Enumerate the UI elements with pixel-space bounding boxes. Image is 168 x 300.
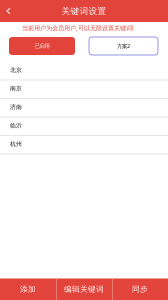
staticText: 添加 [20,284,36,294]
staticText: 济南 [10,103,22,111]
staticText: 已启用 [34,43,49,49]
button[interactable]: 编辑关键词 [56,278,112,300]
staticText: 当前用户为会员用户,可以无限设置关键词! [22,24,134,32]
staticText: 南京 [10,85,22,92]
staticText: 临沂 [10,122,22,129]
button[interactable]: 同步 [112,278,168,300]
button[interactable]: 北京 [0,62,168,80]
staticText: 同步 [132,284,148,294]
button[interactable]: 已启用 [9,37,75,55]
button[interactable]: 济南 [0,99,168,117]
button[interactable]: 方案2 [89,37,158,55]
button[interactable]: 杭州 [0,136,168,154]
staticText: 杭州 [10,140,22,148]
button[interactable]: 南京 [0,80,168,99]
button[interactable]: 临沂 [0,117,168,136]
button[interactable]: 添加 [0,278,56,300]
staticText: 方案2 [117,42,130,50]
staticText: 编辑关键词 [64,284,104,294]
staticText: 北京 [10,66,22,74]
staticText: 关键词设置 [61,5,106,16]
button[interactable]: Back [0,0,17,22]
